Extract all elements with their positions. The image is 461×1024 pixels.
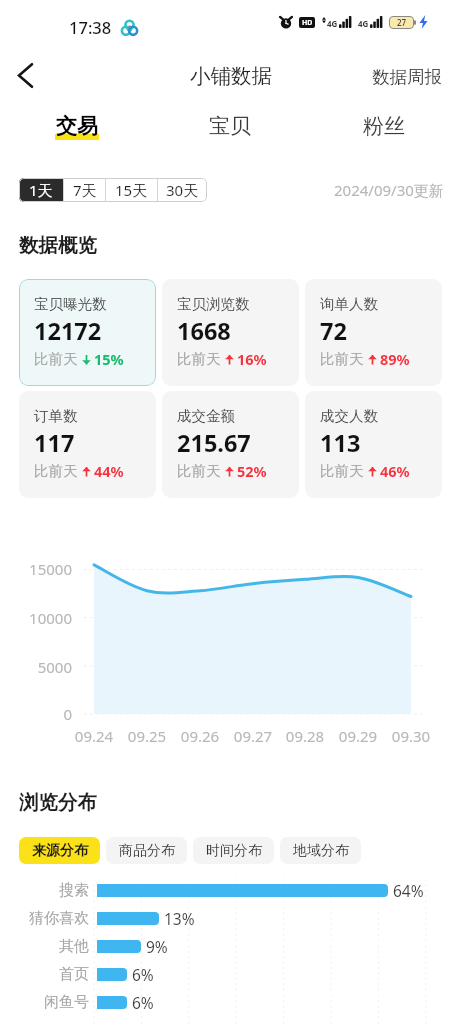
button[interactable]: 宝贝浏览数 — [162, 279, 299, 386]
staticText: 首页 — [9, 965, 89, 984]
button[interactable]: 返回 — [5, 55, 46, 96]
staticText: 09.30 — [387, 726, 435, 746]
staticText: 4G — [358, 18, 369, 29]
staticText: 52% — [237, 461, 267, 481]
staticText: 比前天 — [320, 350, 364, 368]
button[interactable]: 成交金额 — [162, 391, 299, 498]
staticText: 30天 — [166, 180, 199, 200]
staticText: 询单人数 — [320, 295, 378, 313]
staticText: 27 — [397, 17, 407, 28]
staticText: 订单数 — [34, 407, 78, 425]
button[interactable]: 来源分布 — [19, 837, 100, 864]
staticText: 比前天 — [34, 350, 78, 368]
staticText: 17:38 — [69, 16, 112, 38]
button[interactable]: 时间分布 — [193, 837, 274, 864]
staticText: 1668 — [177, 315, 231, 347]
staticText: 215.67 — [177, 427, 251, 459]
staticText: 数据周报 — [372, 66, 442, 88]
staticText: 比前天 — [34, 462, 78, 480]
staticText: 比前天 — [177, 462, 221, 480]
staticText: 09.27 — [229, 726, 277, 746]
staticText: 4G — [327, 18, 338, 29]
button[interactable]: 宝贝曝光数 — [19, 279, 156, 386]
staticText: 搜索 — [9, 881, 89, 900]
button[interactable]: 商品分布 — [106, 837, 187, 864]
staticText: 小铺数据 — [190, 63, 272, 89]
staticText: 09.25 — [123, 726, 171, 746]
button[interactable]: 成交人数 — [305, 391, 442, 498]
button[interactable]: 交易 — [0, 103, 153, 149]
staticText: 粉丝 — [363, 113, 405, 139]
staticText: 72 — [320, 315, 347, 347]
staticText: 数据概览 — [19, 233, 97, 258]
staticText: 宝贝曝光数 — [34, 295, 107, 313]
staticText: 12172 — [34, 315, 102, 347]
staticText: 6% — [132, 964, 154, 985]
staticText: 成交人数 — [320, 407, 378, 425]
staticText: 15天 — [115, 180, 148, 200]
staticText: 13% — [164, 908, 195, 929]
button[interactable]: 15天 — [106, 178, 157, 202]
staticText: 15% — [94, 349, 124, 369]
staticText: 宝贝浏览数 — [177, 295, 250, 313]
staticText: 交易 — [56, 113, 98, 139]
staticText: 15000 — [16, 559, 72, 579]
staticText: 9% — [146, 936, 168, 957]
button[interactable]: 宝贝 — [153, 103, 307, 149]
staticText: 09.24 — [70, 726, 118, 746]
staticText: 0 — [16, 704, 72, 724]
staticText: HD — [302, 18, 313, 28]
staticText: 7天 — [73, 180, 97, 200]
button[interactable]: 询单人数 — [305, 279, 442, 386]
staticText: 117 — [34, 427, 75, 459]
button[interactable]: 30天 — [158, 178, 207, 202]
staticText: 比前天 — [320, 462, 364, 480]
button[interactable]: 订单数 — [19, 391, 156, 498]
staticText: 商品分布 — [119, 842, 175, 860]
staticText: 时间分布 — [206, 842, 262, 860]
staticText: 成交金额 — [177, 407, 235, 425]
staticText: 44% — [94, 461, 124, 481]
staticText: 46% — [380, 461, 410, 481]
staticText: 来源分布 — [32, 842, 88, 860]
staticText: 6% — [132, 992, 154, 1013]
staticText: 其他 — [9, 937, 89, 956]
staticText: 16% — [237, 349, 267, 369]
staticText: 1天 — [29, 180, 53, 200]
staticText: 5000 — [16, 657, 72, 677]
button[interactable]: 1天 — [19, 178, 63, 202]
button[interactable]: 数据周报 — [353, 56, 461, 98]
staticText: 10000 — [16, 608, 72, 628]
staticText: 89% — [380, 349, 410, 369]
staticText: 2024/09/30更新 — [334, 180, 444, 200]
button[interactable]: 粉丝 — [307, 103, 461, 149]
staticText: 09.29 — [334, 726, 382, 746]
staticText: 浏览分布 — [19, 790, 97, 815]
staticText: 猜你喜欢 — [9, 909, 89, 928]
staticText: 64% — [393, 880, 424, 901]
staticText: 113 — [320, 427, 361, 459]
button[interactable]: 7天 — [64, 178, 105, 202]
staticText: 闲鱼号 — [9, 993, 89, 1012]
staticText: 09.28 — [281, 726, 329, 746]
staticText: 地域分布 — [293, 842, 349, 860]
staticText: 宝贝 — [209, 113, 251, 139]
staticText: 09.26 — [176, 726, 224, 746]
button[interactable]: 地域分布 — [280, 837, 361, 864]
staticText: 比前天 — [177, 350, 221, 368]
